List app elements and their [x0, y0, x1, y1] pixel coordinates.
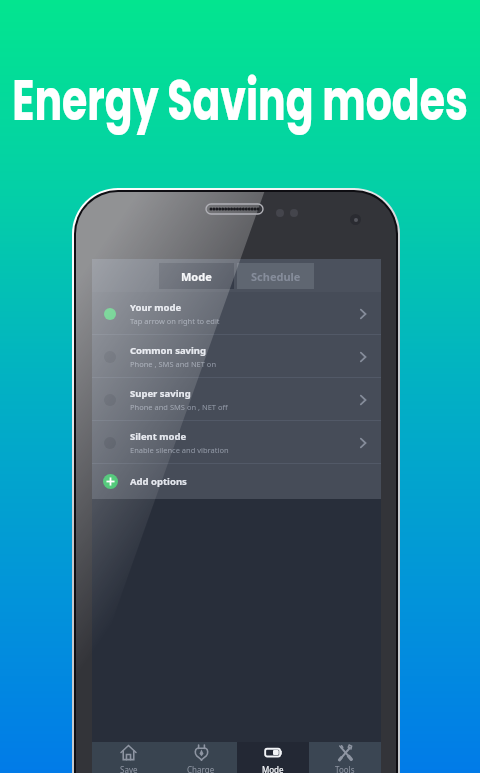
button[interactable]: Schedule	[237, 263, 314, 289]
staticText: Enable silence and vibration	[130, 445, 229, 455]
button[interactable]: Add options	[92, 464, 381, 499]
button[interactable]: Charge	[165, 742, 237, 773]
button[interactable]: Tools	[309, 742, 381, 773]
button[interactable]: Silent mode	[92, 421, 381, 464]
staticText: Super saving	[130, 387, 191, 400]
staticText: Phone , SMS and NET on	[130, 359, 217, 369]
button[interactable]: Save	[92, 742, 165, 773]
staticText: Mode	[262, 764, 284, 773]
button[interactable]: Mode	[159, 263, 234, 289]
staticText: Charge	[187, 764, 215, 773]
button[interactable]: Common saving	[92, 335, 381, 378]
staticText: Your mode	[130, 301, 182, 314]
staticText: Mode	[181, 269, 212, 284]
staticText: Silent mode	[130, 430, 187, 443]
button[interactable]: Super saving	[92, 378, 381, 421]
staticText: Add options	[130, 475, 187, 488]
button[interactable]: Your mode	[92, 292, 381, 335]
staticText: Phone and SMS on , NET off	[130, 402, 228, 412]
staticText: Save	[120, 764, 138, 773]
staticText: Common saving	[130, 344, 207, 357]
button[interactable]: Mode	[237, 742, 309, 773]
staticText: Schedule	[251, 269, 301, 284]
staticText: Tools	[335, 764, 355, 773]
staticText: Tap arrow on right to edit	[130, 316, 220, 326]
staticText: Energy Saving modes	[0, 62, 480, 139]
